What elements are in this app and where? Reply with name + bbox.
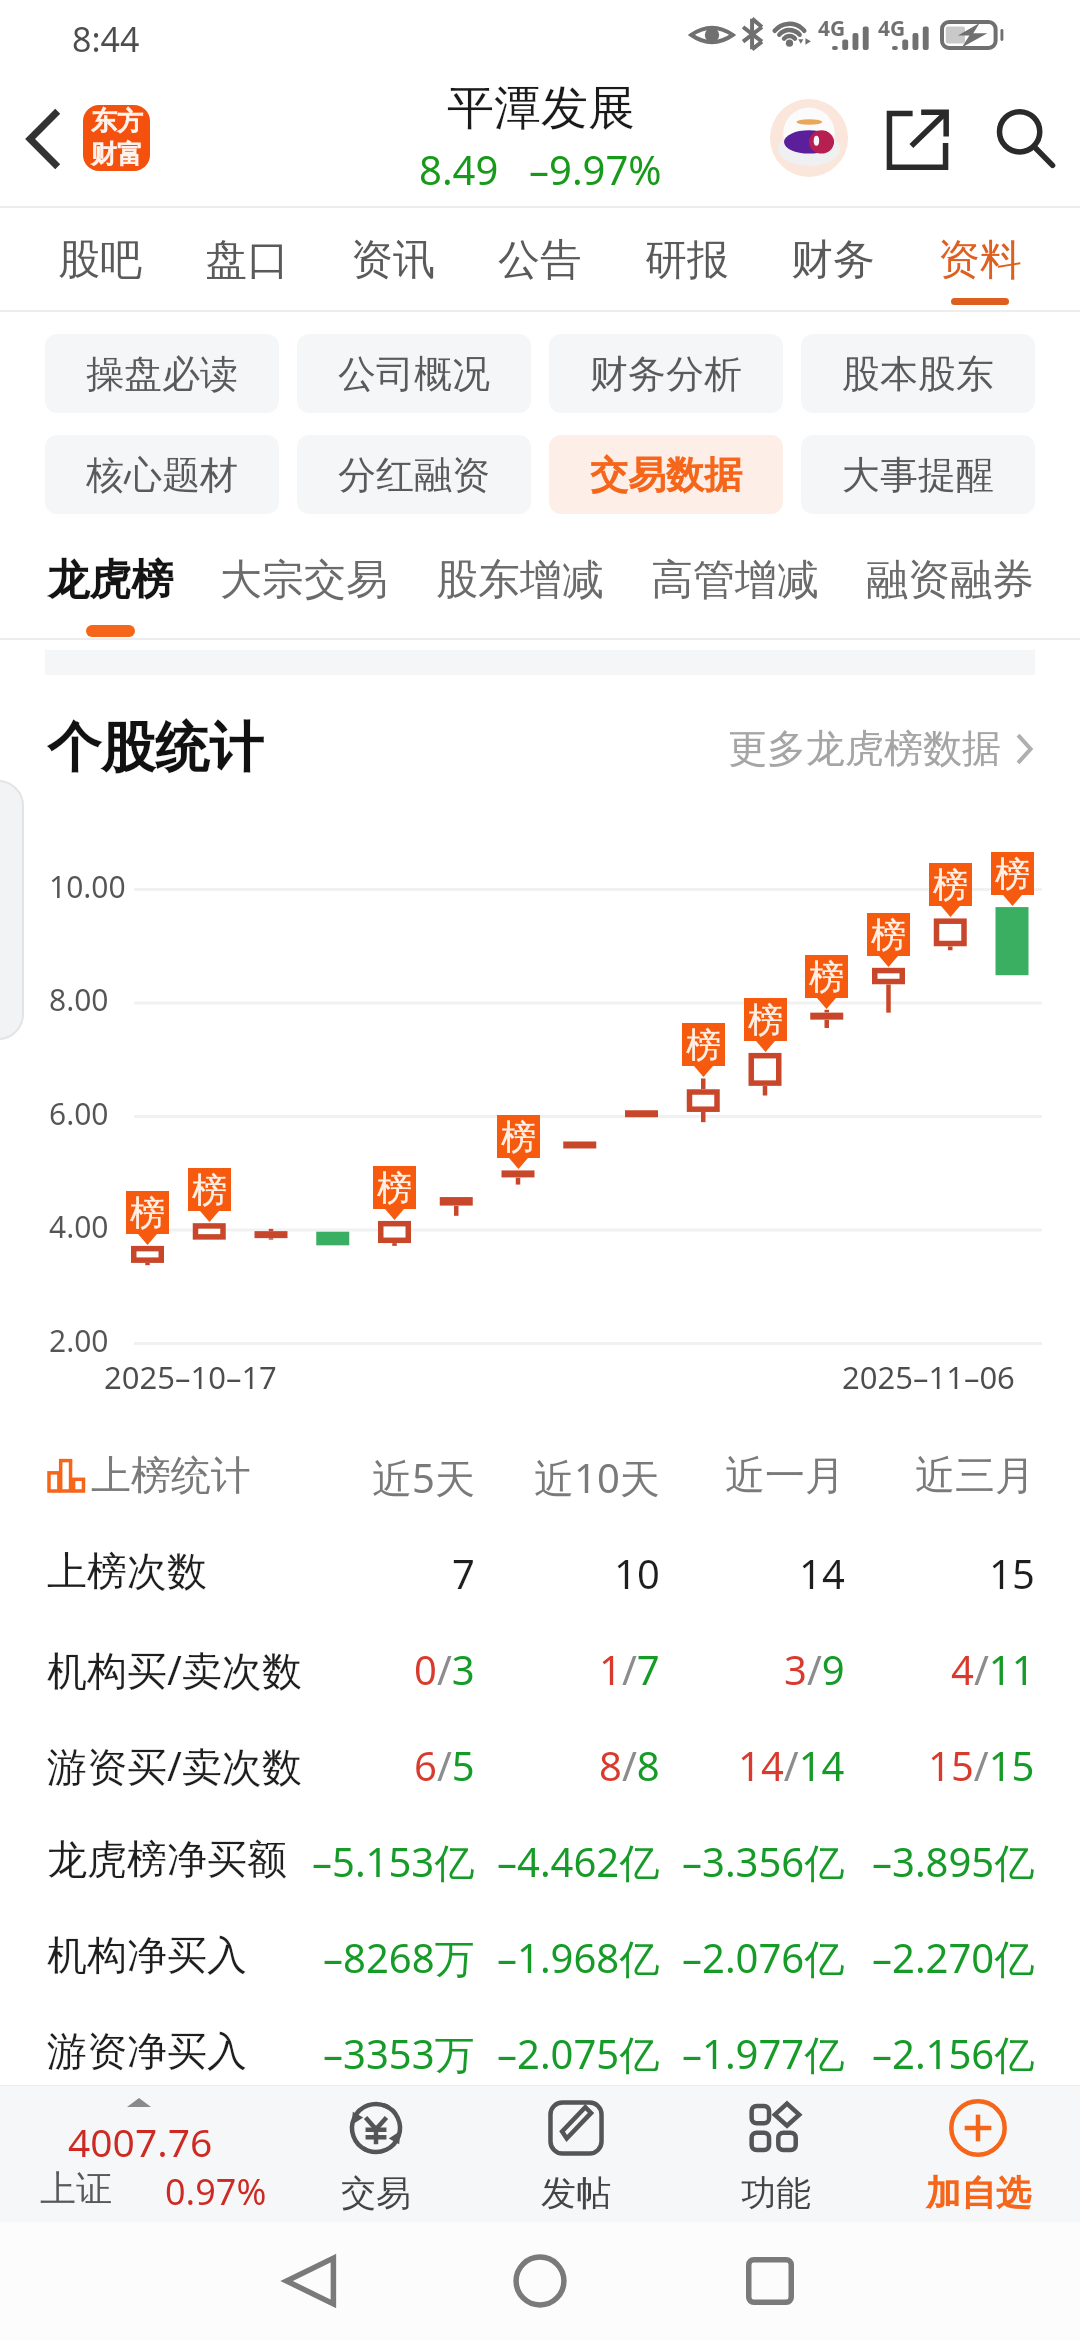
button[interactable]: Search bbox=[985, 100, 1063, 178]
staticText: 6/5 bbox=[414, 1738, 475, 1792]
button[interactable]: 财务 bbox=[785, 212, 881, 305]
staticText: 上榜次数 bbox=[47, 1546, 207, 1596]
staticText: 大事提醒 bbox=[842, 451, 994, 499]
staticText: 8/8 bbox=[599, 1738, 660, 1792]
staticText: 3/9 bbox=[784, 1642, 845, 1696]
staticText: 核心题材 bbox=[86, 451, 238, 499]
button[interactable]: 股东增减 bbox=[436, 529, 604, 637]
staticText: –2.156亿 bbox=[872, 2026, 1035, 2081]
staticText: 10.00 bbox=[49, 866, 126, 907]
staticText: 加自选 bbox=[926, 2171, 1031, 2215]
staticText: 近5天 bbox=[372, 1450, 475, 1505]
button[interactable]: 股吧 bbox=[52, 212, 148, 305]
staticText: 4007.76 bbox=[68, 2115, 213, 2168]
button[interactable]: 大宗交易 bbox=[220, 529, 388, 637]
button[interactable]: 大事提醒 bbox=[801, 435, 1035, 514]
staticText: 功能 bbox=[741, 2171, 811, 2215]
button[interactable]: 发帖 bbox=[486, 2086, 666, 2222]
staticText: 榜 bbox=[871, 913, 906, 956]
staticText: –9.97% bbox=[529, 142, 662, 196]
staticText: 2025–10–17 bbox=[104, 1356, 277, 1398]
staticText: –2.075亿 bbox=[497, 2026, 660, 2081]
button[interactable]: 龙虎榜 bbox=[47, 529, 173, 637]
staticText: 盘口 bbox=[205, 234, 289, 287]
staticText: 公告 bbox=[498, 234, 582, 287]
staticText: –2.270亿 bbox=[872, 1930, 1035, 1985]
button[interactable]: 公司概况 bbox=[297, 334, 531, 413]
staticText: 发帖 bbox=[541, 2171, 611, 2215]
staticText: 榜 bbox=[995, 852, 1030, 895]
button[interactable]: 加自选 bbox=[888, 2086, 1068, 2222]
button[interactable]: 财务分析 bbox=[549, 334, 783, 413]
button[interactable]: 功能 bbox=[686, 2086, 866, 2222]
button[interactable]: 研报 bbox=[639, 212, 735, 305]
staticText: 资讯 bbox=[351, 234, 435, 287]
button[interactable]: 股本股东 bbox=[801, 334, 1035, 413]
staticText: 4G bbox=[818, 14, 846, 43]
staticText: 14/14 bbox=[738, 1738, 845, 1792]
staticText: 东方 bbox=[91, 105, 143, 138]
button[interactable]: Share bbox=[878, 100, 956, 178]
staticText: 财务分析 bbox=[590, 350, 742, 398]
staticText: 高管增减 bbox=[651, 554, 819, 607]
button[interactable]: Back bbox=[5, 101, 81, 177]
button[interactable]: 核心题材 bbox=[45, 435, 279, 514]
staticText: 15/15 bbox=[928, 1738, 1035, 1792]
staticText: 榜 bbox=[686, 1023, 721, 1066]
staticText: –8268万 bbox=[323, 1930, 475, 1985]
button[interactable]: Shanghai Composite Index bbox=[0, 2086, 290, 2222]
staticText: 更多龙虎榜数据 bbox=[728, 724, 1001, 773]
staticText: 财务 bbox=[791, 234, 875, 287]
staticText: 平潭发展 bbox=[447, 79, 635, 138]
staticText: 榜 bbox=[748, 998, 783, 1041]
staticText: 2025–11–06 bbox=[842, 1356, 1015, 1398]
staticText: 机构买/卖次数 bbox=[47, 1642, 302, 1697]
staticText: 2.00 bbox=[49, 1320, 109, 1361]
staticText: 操盘必读 bbox=[86, 350, 238, 398]
staticText: 8.00 bbox=[49, 979, 109, 1020]
button[interactable]: 更多龙虎榜数据 bbox=[718, 716, 1045, 781]
staticText: 14 bbox=[799, 1546, 845, 1600]
staticText: 分红融资 bbox=[338, 451, 490, 499]
button[interactable]: Back bbox=[230, 2231, 390, 2331]
button[interactable]: 交易数据 bbox=[549, 435, 783, 514]
staticText: 10 bbox=[614, 1546, 660, 1600]
staticText: –3353万 bbox=[323, 2026, 475, 2081]
staticText: 研报 bbox=[645, 234, 729, 287]
staticText: 游资净买入 bbox=[47, 2026, 247, 2076]
staticText: 资料 bbox=[938, 234, 1022, 287]
staticText: 融资融券 bbox=[866, 554, 1034, 607]
staticText: –1.977亿 bbox=[682, 2026, 845, 2081]
button[interactable]: 公告 bbox=[492, 212, 588, 305]
staticText: 上证 bbox=[40, 2166, 112, 2211]
button[interactable]: East Money logo bbox=[83, 105, 150, 171]
staticText: 股东增减 bbox=[436, 554, 604, 607]
staticText: 交易数据 bbox=[590, 451, 742, 499]
staticText: 交易 bbox=[341, 2171, 411, 2215]
button[interactable]: Home bbox=[460, 2231, 620, 2331]
button[interactable]: 高管增减 bbox=[651, 529, 819, 637]
staticText: 0/3 bbox=[414, 1642, 475, 1696]
staticText: 龙虎榜 bbox=[47, 554, 173, 607]
staticText: 榜 bbox=[809, 955, 844, 998]
staticText: 近10天 bbox=[534, 1450, 660, 1505]
button[interactable]: 分红融资 bbox=[297, 435, 531, 514]
button[interactable]: Recents bbox=[690, 2231, 850, 2331]
staticText: 公司概况 bbox=[338, 350, 490, 398]
staticText: 榜 bbox=[130, 1191, 165, 1234]
staticText: 8.49 bbox=[419, 142, 499, 196]
button[interactable]: 资料 bbox=[932, 212, 1028, 305]
staticText: 8:44 bbox=[72, 16, 140, 62]
staticText: 近一月 bbox=[725, 1450, 845, 1500]
staticText: 0.97% bbox=[165, 2167, 267, 2216]
button[interactable]: AI Assistant bbox=[770, 99, 848, 177]
staticText: 财富 bbox=[91, 138, 143, 171]
staticText: 游资买/卖次数 bbox=[47, 1738, 302, 1793]
staticText: 股本股东 bbox=[842, 350, 994, 398]
button[interactable]: 资讯 bbox=[345, 212, 441, 305]
staticText: 榜 bbox=[933, 863, 968, 906]
button[interactable]: 盘口 bbox=[199, 212, 295, 305]
button[interactable]: 融资融券 bbox=[866, 529, 1034, 637]
button[interactable]: 交易 bbox=[286, 2086, 466, 2222]
button[interactable]: 操盘必读 bbox=[45, 334, 279, 413]
